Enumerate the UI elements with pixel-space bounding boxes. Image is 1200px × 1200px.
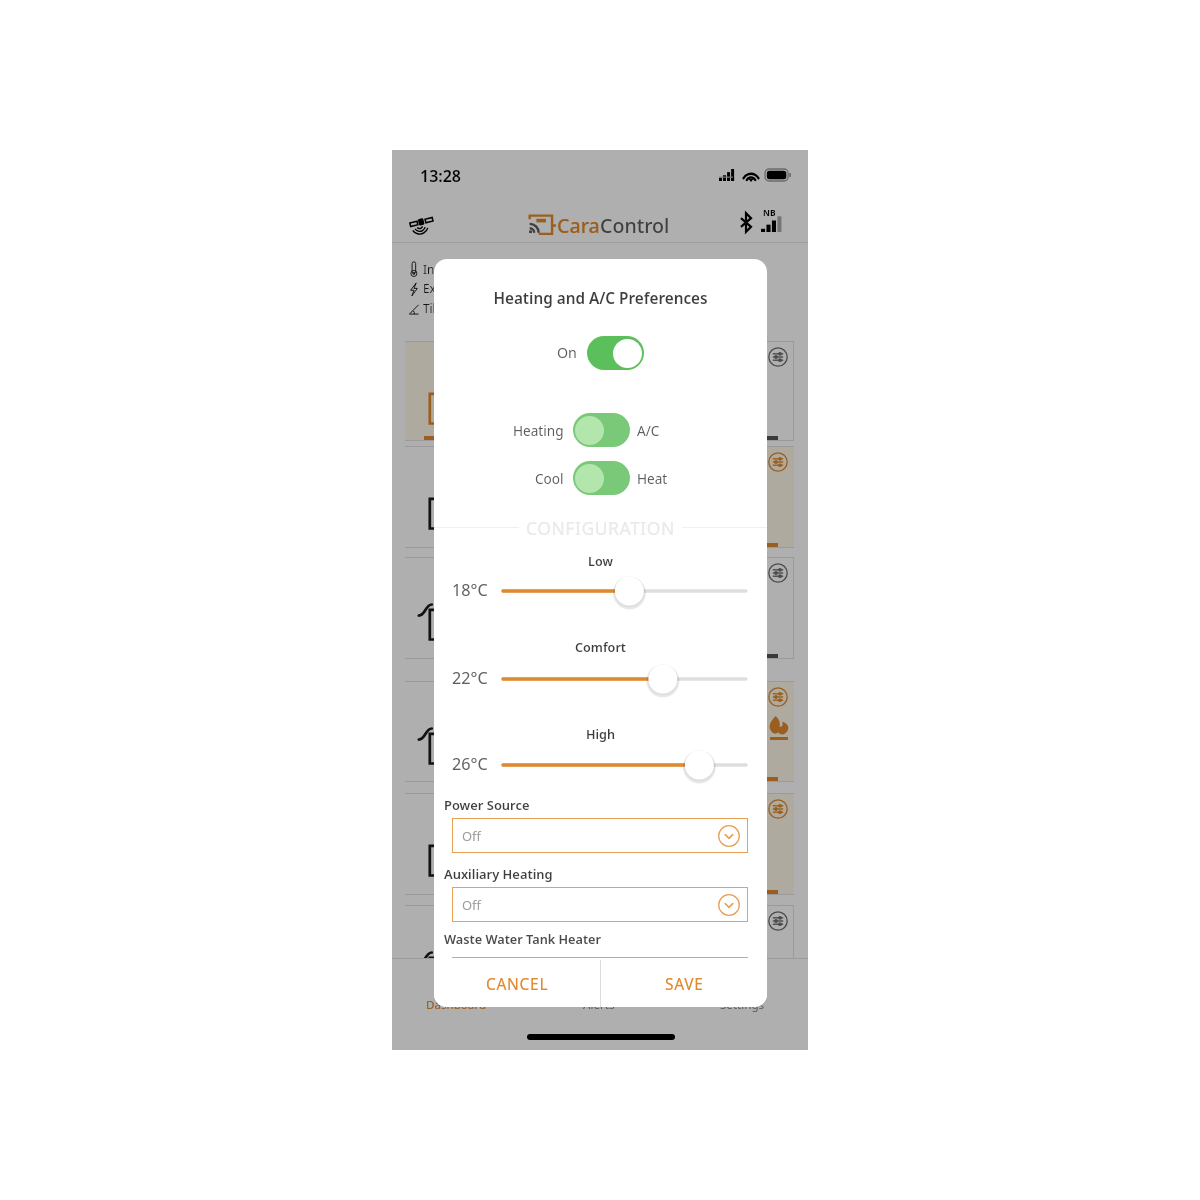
button[interactable]: Settings — [768, 911, 788, 931]
staticText: Alerts — [583, 997, 615, 1013]
button[interactable]: Toggle — [587, 336, 644, 370]
button[interactable]: Settings — [768, 687, 788, 707]
button[interactable]: Settings — [405, 681, 794, 782]
staticText: Tilt: 1.2° — [423, 300, 468, 316]
button[interactable]: Settings — [768, 452, 788, 472]
staticText: SAVE — [665, 973, 704, 994]
button[interactable]: Settings — [405, 905, 794, 1005]
staticText: Low — [434, 553, 767, 570]
staticText: Off — [462, 827, 481, 845]
button[interactable]: Toggle — [573, 413, 630, 447]
staticText: Cara — [557, 212, 600, 239]
staticText: 22°C — [452, 667, 488, 689]
staticText: On — [557, 343, 577, 362]
button[interactable]: Off — [452, 818, 748, 853]
button[interactable]: Off — [452, 887, 748, 922]
staticText: Power Source — [444, 796, 530, 814]
staticText: Cool — [535, 469, 564, 488]
button[interactable]: Settings — [768, 347, 788, 367]
staticText: External: 12.0 °C — [423, 280, 514, 296]
staticText: CANCEL — [486, 973, 549, 994]
button[interactable]: Bluetooth — [734, 210, 758, 234]
staticText: Heating and A/C Preferences — [434, 288, 767, 309]
staticText: CONFIGURATION — [526, 516, 675, 538]
staticText: Settings — [720, 997, 765, 1013]
button[interactable]: Dashboard — [398, 971, 514, 1013]
staticText: Off — [462, 896, 481, 914]
staticText: Comfort — [434, 639, 767, 656]
staticText: Dashboard — [426, 997, 487, 1013]
button[interactable]: Settings — [405, 341, 794, 441]
button[interactable]: Settings — [405, 793, 794, 895]
staticText: Heating — [513, 421, 564, 440]
button[interactable]: Settings — [768, 799, 788, 819]
button[interactable]: Settings — [405, 446, 794, 548]
button[interactable]: Settings — [405, 557, 794, 659]
staticText: 26°C — [452, 753, 488, 775]
staticText: Heat — [637, 469, 668, 488]
staticText: High — [434, 726, 767, 743]
button[interactable]: Settings — [684, 971, 800, 1013]
staticText: Waste Water Tank Heater — [444, 930, 602, 947]
button[interactable]: Alerts — [541, 971, 657, 1013]
staticText: NB — [763, 207, 776, 219]
button[interactable]: GPS — [406, 211, 436, 241]
staticText: Control — [600, 212, 670, 239]
button[interactable]: CANCEL — [434, 960, 600, 1007]
button[interactable]: Settings — [768, 563, 788, 583]
staticText: Interior: 21.5 °C — [423, 261, 511, 277]
staticText: Auxiliary Heating — [444, 865, 553, 883]
button[interactable]: Toggle — [573, 461, 630, 495]
staticText: 18°C — [452, 579, 488, 601]
staticText: A/C — [637, 421, 660, 440]
staticText: 13:28 — [420, 165, 462, 187]
button[interactable]: SAVE — [601, 960, 767, 1007]
